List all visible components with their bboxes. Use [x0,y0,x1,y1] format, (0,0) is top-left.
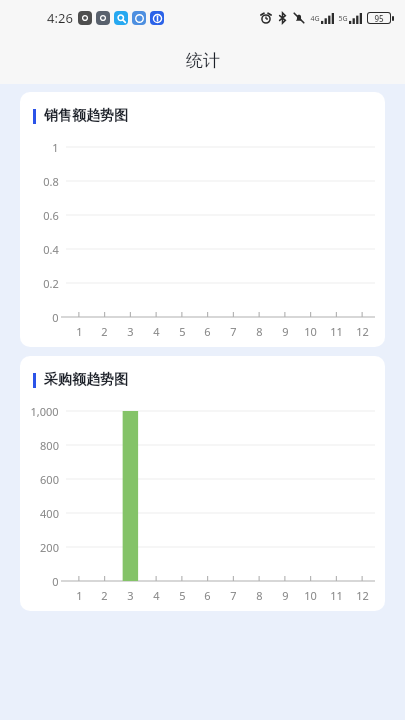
staticText: 9 [282,324,289,339]
other: Alarm [260,12,272,24]
staticText: 9 [282,588,289,603]
staticText: 0.2 [43,276,59,291]
other: Bluetooth [278,12,287,24]
staticText: 统计 [186,50,220,71]
staticText: 4 [153,588,160,603]
staticText: 10 [304,324,317,339]
staticText: 4G [310,14,320,24]
staticText: 6 [204,324,211,339]
staticText: 3 [127,588,134,603]
staticText: 1,000 [30,404,59,419]
staticText: 0.6 [43,208,59,223]
staticText: 3 [127,324,134,339]
staticText: 1 [76,588,83,603]
other: Silent mode [293,12,305,24]
staticText: 2 [101,588,108,603]
staticText: 600 [40,472,59,487]
staticText: 95 [374,13,384,23]
staticText: 4:26 [47,9,73,27]
staticText: 7 [230,324,237,339]
staticText: 采购额趋势图 [44,371,128,389]
staticText: 400 [40,506,59,521]
staticText: 12 [356,324,369,339]
staticText: 0 [52,310,59,325]
staticText: 800 [40,438,59,453]
staticText: 2 [101,324,108,339]
staticText: 1 [52,140,59,155]
staticText: 6 [204,588,211,603]
button[interactable]: 销售额趋势图 [20,92,385,347]
staticText: 5 [179,588,186,603]
staticText: 销售额趋势图 [44,107,128,125]
staticText: 5 [179,324,186,339]
staticText: 4 [153,324,160,339]
staticText: 12 [356,588,369,603]
staticText: 0 [52,574,59,589]
staticText: 8 [256,588,263,603]
staticText: 11 [330,324,343,339]
staticText: 0.4 [43,242,59,257]
staticText: 5G [338,14,348,24]
staticText: 7 [230,588,237,603]
staticText: 0.8 [43,174,59,189]
staticText: 10 [304,588,317,603]
staticText: 1 [76,324,83,339]
staticText: 8 [256,324,263,339]
staticText: 200 [40,540,59,555]
button[interactable]: 采购额趋势图 [20,356,385,611]
staticText: 11 [330,588,343,603]
